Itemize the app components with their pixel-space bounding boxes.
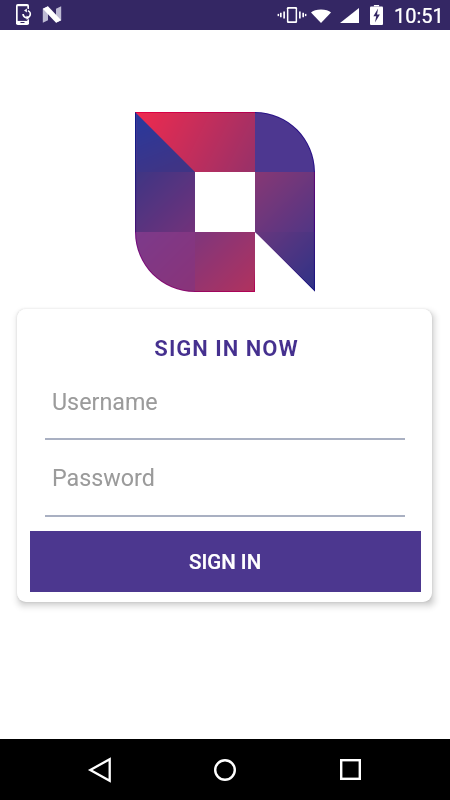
staticText: 10:51 [394,4,444,27]
staticText: Password [52,464,155,491]
button[interactable]: Back [76,739,124,800]
staticText: SIGN IN NOW [19,336,432,362]
staticText: SIGN IN [189,550,262,574]
button[interactable]: Recent apps [326,739,374,800]
button[interactable]: Home [201,739,249,800]
staticText: Username [52,388,158,415]
button[interactable]: SIGN IN [30,531,421,592]
